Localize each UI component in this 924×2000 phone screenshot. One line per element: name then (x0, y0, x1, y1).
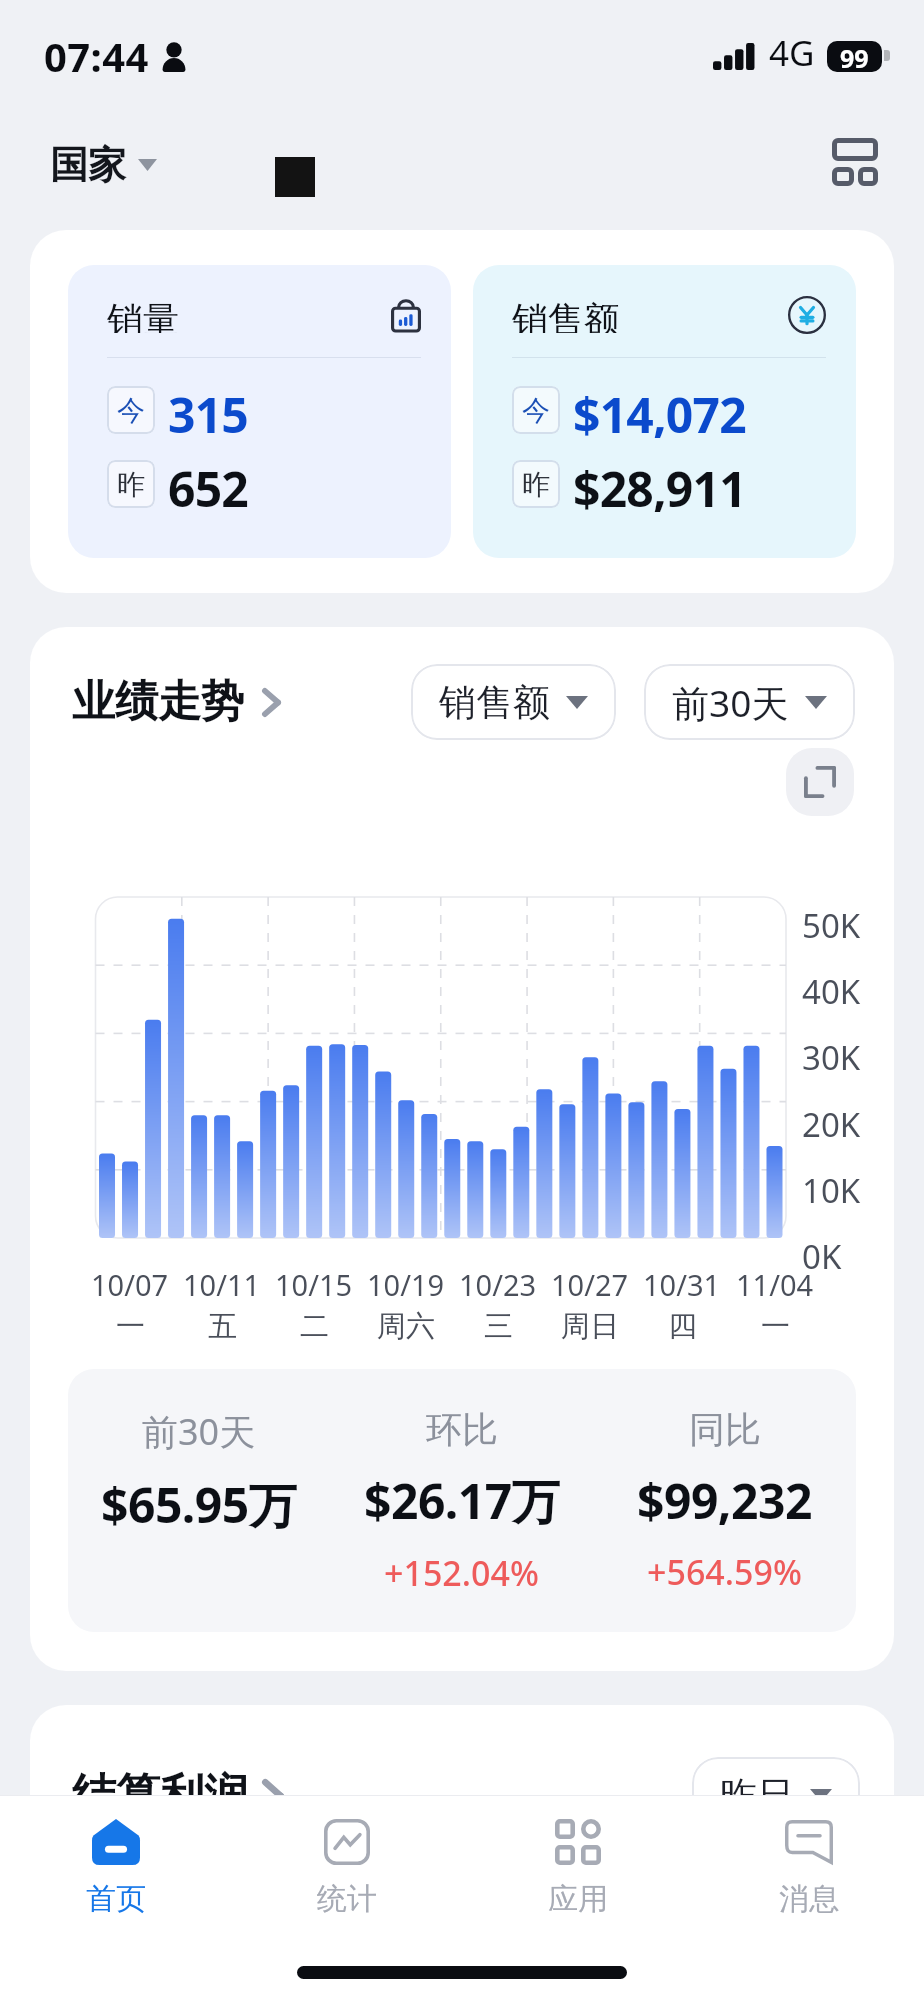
staticText: 10/11 (183, 1265, 261, 1304)
button[interactable]: 首页 (0, 1795, 231, 1925)
button[interactable]: 国家 (50, 137, 157, 193)
button[interactable]: 统计 (231, 1795, 462, 1925)
staticText: 三 (484, 1308, 513, 1345)
staticText: +564.59% (647, 1549, 802, 1595)
staticText: 昨 (117, 467, 145, 502)
staticText: $14,072 (573, 382, 746, 438)
staticText: 4G (769, 29, 815, 77)
staticText: 10/31 (643, 1265, 721, 1304)
button[interactable]: 销量 (68, 265, 451, 558)
staticText: 周日 (561, 1308, 619, 1345)
staticText: 统计 (317, 1880, 377, 1918)
staticText: +152.04% (384, 1550, 539, 1596)
staticText: 环比 (426, 1407, 498, 1452)
staticText: 652 (168, 456, 248, 512)
staticText: 今 (522, 393, 550, 428)
staticText: 首页 (86, 1880, 146, 1918)
staticText: 11/04 (736, 1265, 814, 1304)
staticText: 10/07 (91, 1265, 169, 1304)
staticText: $99,232 (637, 1468, 812, 1533)
button[interactable]: 结算利润 (72, 1762, 284, 1829)
staticText: 昨 (522, 467, 550, 502)
staticText: 五 (208, 1308, 237, 1345)
staticText: 国家 (50, 141, 126, 189)
staticText: 07:44 (44, 29, 149, 83)
button[interactable]: 应用 (462, 1795, 693, 1925)
staticText: 10/23 (459, 1265, 537, 1304)
staticText: 20K (802, 1102, 861, 1147)
staticText: 今 (117, 393, 145, 428)
staticText: 二 (300, 1308, 329, 1345)
staticText: 0K (802, 1234, 842, 1279)
staticText: 40K (802, 969, 861, 1014)
staticText: 消息 (779, 1880, 839, 1918)
staticText: 周六 (377, 1308, 435, 1345)
button[interactable]: 业绩走势 (72, 669, 281, 735)
staticText: 应用 (548, 1880, 608, 1918)
staticText: 业绩走势 (72, 675, 244, 729)
staticText: 10/27 (551, 1265, 629, 1304)
button[interactable]: 昨日 (692, 1757, 860, 1833)
staticText: 销量 (107, 297, 179, 333)
staticText: 315 (168, 382, 248, 438)
staticText: 前30天 (142, 1407, 256, 1456)
staticText: 同比 (689, 1407, 761, 1452)
staticText: 10K (802, 1168, 861, 1213)
staticText: 99 (840, 41, 869, 72)
staticText: 销售额 (439, 679, 550, 726)
staticText: 30K (802, 1035, 861, 1080)
staticText: 10/19 (367, 1265, 445, 1304)
staticText: 结算利润 (72, 1768, 248, 1823)
staticText: 一 (761, 1308, 790, 1345)
staticText: $65.95万 (101, 1472, 297, 1538)
staticText: 销售额 (512, 297, 620, 333)
staticText: 50K (802, 903, 861, 948)
staticText: 昨日 (720, 1772, 794, 1819)
button[interactable]: Expand chart (786, 748, 854, 816)
button[interactable]: 前30天 (644, 664, 855, 740)
staticText: 10/15 (275, 1265, 353, 1304)
staticText: $26.17万 (364, 1468, 560, 1534)
staticText: 四 (668, 1308, 697, 1345)
button[interactable]: 销售额 (473, 265, 856, 558)
staticText: 前30天 (672, 677, 789, 728)
staticText: 一 (116, 1308, 145, 1345)
staticText: $28,911 (573, 456, 746, 512)
button[interactable]: 销售额 (411, 664, 616, 740)
button[interactable]: 消息 (693, 1795, 924, 1925)
button[interactable]: Dashboard layout (817, 124, 893, 200)
